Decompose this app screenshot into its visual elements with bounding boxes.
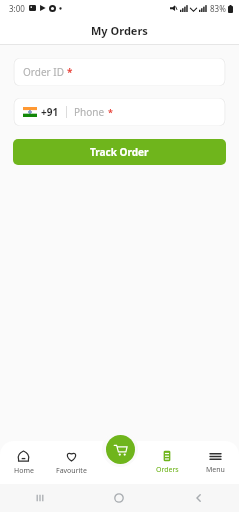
button[interactable]: Orders [143,441,191,484]
button[interactable]: Favourite [47,441,95,484]
button[interactable]: Track Order [13,139,226,165]
button[interactable]: Home [0,441,47,484]
staticText: My Orders [91,23,148,38]
staticText: * [108,106,113,118]
staticText: Menu [206,465,225,475]
staticText: 3:00 [9,3,25,14]
staticText: Orders [156,465,179,475]
staticText: 83% [210,3,226,14]
button[interactable]: Cart [106,435,135,464]
staticText: Track Order [90,145,149,159]
staticText: * [67,65,73,79]
staticText: Home [14,466,34,476]
button[interactable]: Menu [191,441,239,484]
staticText: Favourite [56,466,87,476]
button[interactable]: +91 [13,98,226,126]
staticText: Order ID [23,65,64,79]
staticText: +91 [41,105,59,119]
button[interactable]: Order ID [13,58,226,86]
staticText: Phone [74,105,105,119]
